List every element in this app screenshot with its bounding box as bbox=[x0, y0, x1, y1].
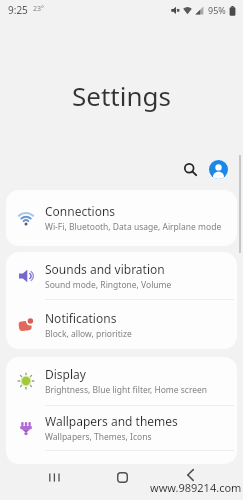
staticText: 23° bbox=[33, 4, 45, 14]
button[interactable]: Wallpapers and themes bbox=[6, 406, 237, 450]
staticText: Display bbox=[45, 366, 86, 382]
staticText: Settings bbox=[72, 78, 171, 113]
staticText: Block, allow, prioritize bbox=[45, 328, 132, 340]
staticText: Connections bbox=[45, 203, 116, 219]
button[interactable] bbox=[183, 162, 198, 177]
button[interactable] bbox=[209, 160, 228, 179]
staticText: Sounds and vibration bbox=[45, 261, 165, 277]
staticText: www.989214.com bbox=[150, 480, 242, 495]
staticText: Wallpapers, Themes, Icons bbox=[45, 431, 152, 443]
button[interactable] bbox=[110, 465, 134, 489]
button[interactable] bbox=[42, 465, 66, 489]
button[interactable]: Display bbox=[6, 357, 237, 405]
staticText: Brightness, Blue light filter, Home scre… bbox=[45, 384, 208, 396]
button[interactable]: Notifications bbox=[6, 300, 237, 349]
button[interactable]: Connections bbox=[6, 190, 237, 246]
staticText: Notifications bbox=[45, 310, 117, 326]
button[interactable] bbox=[178, 463, 202, 487]
staticText: 95% bbox=[208, 4, 226, 16]
staticText: Sound mode, Ringtone, Volume bbox=[45, 279, 172, 291]
button[interactable]: Sounds and vibration bbox=[6, 252, 237, 299]
staticText: Wi-Fi, Bluetooth, Data usage, Airplane m… bbox=[45, 221, 222, 233]
staticText: 9:25 bbox=[8, 3, 28, 17]
staticText: Wallpapers and themes bbox=[45, 413, 178, 429]
